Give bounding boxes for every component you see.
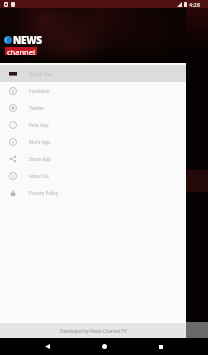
staticText: More App <box>29 139 51 145</box>
staticText: About Us <box>29 173 49 179</box>
staticText: Privacy Policy <box>29 190 58 196</box>
button[interactable]: Rate App <box>0 116 186 133</box>
button[interactable]: Recents <box>151 338 171 355</box>
button[interactable]: More App <box>0 133 186 150</box>
button[interactable]: Share App <box>0 150 186 167</box>
staticText: Facebook <box>29 88 50 94</box>
staticText: Developed by News Channel TV <box>60 328 127 334</box>
button[interactable]: Watch Live <box>0 65 186 82</box>
staticText: Twitter <box>29 105 45 111</box>
button[interactable]: About Us <box>0 167 186 184</box>
staticText: NEWS <box>13 33 42 47</box>
staticText: Share App <box>29 156 52 162</box>
button[interactable]: Twitter <box>0 99 186 116</box>
button[interactable]: Back <box>37 338 57 355</box>
staticText: channel <box>7 47 35 55</box>
staticText: 4:28 <box>189 1 200 8</box>
button[interactable]: Privacy Policy <box>0 184 186 201</box>
staticText: Watch Live <box>29 71 53 77</box>
staticText: Rate App <box>29 122 49 128</box>
button[interactable]: Facebook <box>0 82 186 99</box>
button[interactable]: Home <box>94 338 114 355</box>
